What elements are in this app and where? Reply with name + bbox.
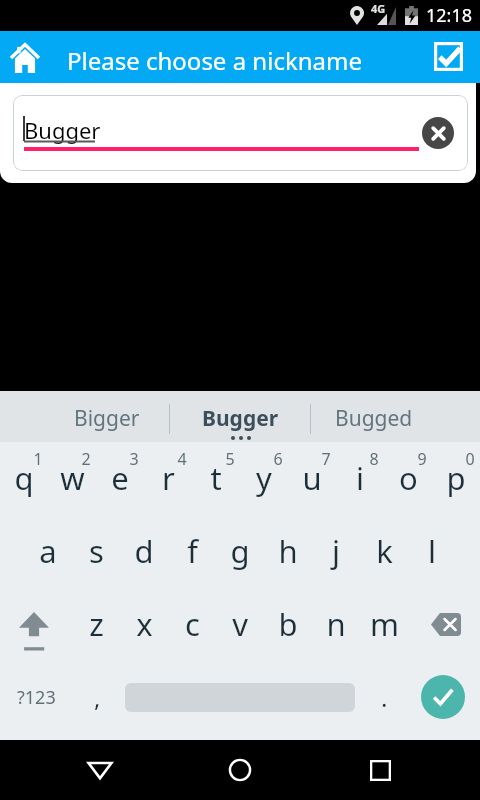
- button[interactable]: e: [96, 450, 144, 506]
- button[interactable]: Home: [220, 750, 260, 790]
- button[interactable]: Shift: [10, 597, 58, 653]
- staticText: f: [187, 530, 198, 572]
- button[interactable]: Back: [80, 750, 120, 790]
- button[interactable]: a: [24, 523, 72, 579]
- button[interactable]: Clear text: [422, 117, 454, 149]
- staticText: d: [134, 530, 154, 572]
- button[interactable]: m: [360, 596, 408, 652]
- staticText: Please choose a nickname: [67, 44, 362, 77]
- staticText: b: [278, 603, 298, 645]
- staticText: j: [332, 530, 340, 572]
- staticText: k: [376, 530, 393, 572]
- staticText: p: [446, 457, 466, 499]
- staticText: 8: [369, 448, 379, 466]
- staticText: 1: [33, 448, 43, 466]
- staticText: x: [136, 603, 153, 645]
- staticText: c: [185, 603, 200, 645]
- staticText: s: [89, 530, 104, 572]
- button[interactable]: z: [72, 596, 120, 652]
- staticText: m: [370, 603, 399, 645]
- staticText: u: [302, 457, 322, 499]
- staticText: 12:18: [426, 3, 473, 28]
- button[interactable]: Enter: [421, 675, 465, 719]
- button[interactable]: Confirm: [428, 36, 468, 76]
- staticText: Bugger: [24, 115, 101, 145]
- button[interactable]: g: [216, 523, 264, 579]
- staticText: ?123: [17, 685, 56, 710]
- staticText: y: [256, 457, 272, 499]
- button[interactable]: o: [384, 450, 432, 506]
- button[interactable]: Backspace: [422, 597, 470, 649]
- button[interactable]: w: [48, 450, 96, 506]
- button[interactable]: Bugged: [311, 391, 480, 442]
- staticText: a: [39, 530, 57, 572]
- staticText: Bugged: [335, 404, 413, 433]
- staticText: 7: [321, 448, 331, 466]
- button[interactable]: u: [288, 450, 336, 506]
- staticText: e: [111, 457, 129, 499]
- staticText: 4: [177, 448, 187, 466]
- button[interactable]: Bigger: [0, 391, 169, 442]
- staticText: 0: [465, 448, 475, 466]
- staticText: n: [326, 603, 346, 645]
- button[interactable]: Bugger: [170, 391, 310, 442]
- button[interactable]: k: [360, 523, 408, 579]
- button[interactable]: n: [312, 596, 360, 652]
- staticText: z: [89, 603, 104, 645]
- staticText: l: [428, 530, 436, 572]
- staticText: q: [14, 457, 34, 499]
- staticText: r: [162, 457, 175, 499]
- staticText: g: [230, 530, 250, 572]
- button[interactable]: q: [0, 450, 48, 506]
- staticText: h: [278, 530, 298, 572]
- button[interactable]: f: [168, 523, 216, 579]
- staticText: .: [381, 681, 388, 714]
- button[interactable]: l: [408, 523, 456, 579]
- staticText: 2: [81, 448, 91, 466]
- staticText: Bigger: [74, 404, 140, 433]
- button[interactable]: ?123: [12, 673, 60, 721]
- button[interactable]: j: [312, 523, 360, 579]
- staticText: 4G: [371, 1, 386, 16]
- staticText: 5: [225, 448, 235, 466]
- button[interactable]: Recent apps: [360, 750, 400, 790]
- staticText: 9: [417, 448, 427, 466]
- button[interactable]: t: [192, 450, 240, 506]
- button[interactable]: s: [72, 523, 120, 579]
- staticText: t: [210, 457, 222, 499]
- staticText: Bugger: [202, 404, 279, 433]
- button[interactable]: .: [360, 673, 408, 721]
- button[interactable]: Home: [5, 38, 45, 78]
- button[interactable]: i: [336, 450, 384, 506]
- button[interactable]: b: [264, 596, 312, 652]
- staticText: 3: [129, 448, 139, 466]
- button[interactable]: r: [144, 450, 192, 506]
- staticText: i: [356, 457, 364, 499]
- staticText: ,: [94, 681, 101, 714]
- button[interactable]: d: [120, 523, 168, 579]
- button[interactable]: v: [216, 596, 264, 652]
- button[interactable]: h: [264, 523, 312, 579]
- button[interactable]: ,: [73, 673, 121, 721]
- staticText: w: [60, 457, 85, 499]
- button[interactable]: p: [432, 450, 480, 506]
- staticText: o: [399, 457, 418, 499]
- staticText: v: [232, 603, 248, 645]
- button[interactable]: c: [168, 596, 216, 652]
- button[interactable]: x: [120, 596, 168, 652]
- staticText: 6: [273, 448, 283, 466]
- button[interactable]: y: [240, 450, 288, 506]
